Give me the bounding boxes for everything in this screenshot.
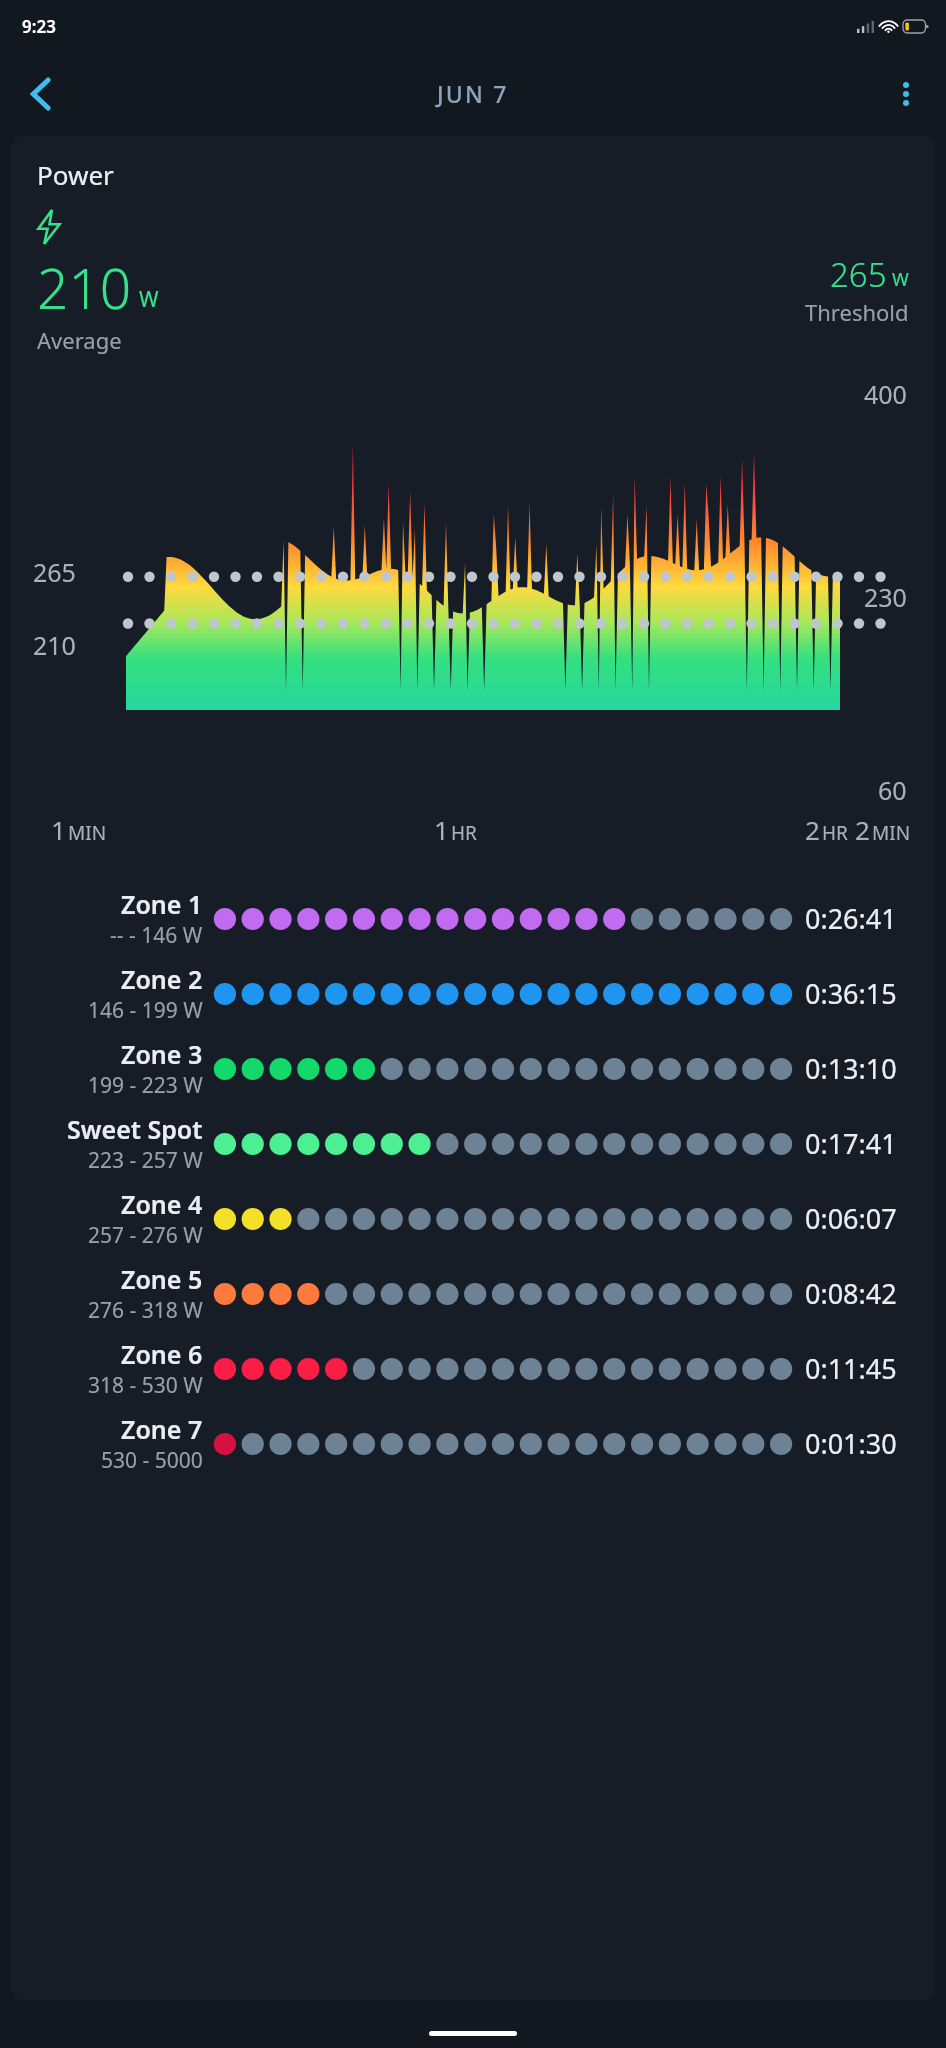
staticText: 400	[864, 377, 907, 411]
staticText: 0:36:15	[805, 975, 935, 1012]
button[interactable]: Sweet Spot	[11, 1106, 935, 1181]
staticText: Zone 4	[121, 1187, 203, 1221]
staticText: MIN	[872, 820, 911, 846]
staticText: 0:26:41	[805, 900, 935, 937]
staticText: Zone 3	[121, 1037, 203, 1071]
staticText: 2	[855, 812, 870, 847]
staticText: W	[892, 267, 909, 292]
staticText: 230	[864, 580, 907, 614]
staticText: Zone 7	[121, 1412, 203, 1446]
staticText: 199 - 223 W	[88, 1071, 203, 1100]
staticText: Zone 6	[121, 1337, 203, 1371]
staticText: 1	[434, 812, 449, 847]
staticText: 530 - 5000	[101, 1446, 203, 1475]
staticText: 210	[33, 628, 76, 662]
staticText: Power	[37, 157, 114, 192]
staticText: 0:11:45	[805, 1350, 935, 1387]
button[interactable]: Zone 5	[11, 1256, 935, 1331]
button[interactable]: Zone 3	[11, 1031, 935, 1106]
staticText: Average	[37, 325, 122, 355]
staticText: 0:06:07	[805, 1200, 935, 1237]
staticText: 265	[830, 252, 887, 297]
staticText: MIN	[68, 820, 107, 846]
button[interactable]: Zone 2	[11, 956, 935, 1031]
staticText: JUN 7	[437, 78, 509, 109]
staticText: 0:17:41	[805, 1125, 935, 1162]
button[interactable]: More options	[878, 66, 934, 122]
staticText: Zone 1	[121, 887, 203, 921]
staticText: W	[139, 285, 159, 314]
staticText: 0:08:42	[805, 1275, 935, 1312]
staticText: 2	[805, 812, 820, 847]
staticText: 265	[33, 555, 76, 589]
staticText: Threshold	[805, 297, 909, 327]
staticText: Zone 5	[121, 1262, 203, 1296]
staticText: -- - 146 W	[110, 921, 203, 950]
button[interactable]: Zone 7	[11, 1406, 935, 1481]
staticText: 60	[878, 773, 907, 807]
staticText: 276 - 318 W	[88, 1296, 203, 1325]
staticText: Zone 2	[121, 962, 203, 996]
button[interactable]: Zone 4	[11, 1181, 935, 1256]
staticText: 0:13:10	[805, 1050, 935, 1087]
staticText: 257 - 276 W	[88, 1221, 203, 1250]
staticText: HR	[451, 820, 477, 846]
button[interactable]: Back	[12, 66, 68, 122]
staticText: 146 - 199 W	[88, 996, 203, 1025]
button[interactable]: Zone 6	[11, 1331, 935, 1406]
staticText: Sweet Spot	[67, 1112, 203, 1146]
staticText: 1	[51, 812, 66, 847]
button[interactable]: Zone 1	[11, 881, 935, 956]
staticText: 9:23	[22, 15, 56, 38]
staticText: 318 - 530 W	[88, 1371, 203, 1400]
staticText: 0:01:30	[805, 1425, 935, 1462]
staticText: HR	[822, 820, 848, 846]
staticText: 223 - 257 W	[88, 1146, 203, 1175]
staticText: 210	[37, 250, 132, 325]
